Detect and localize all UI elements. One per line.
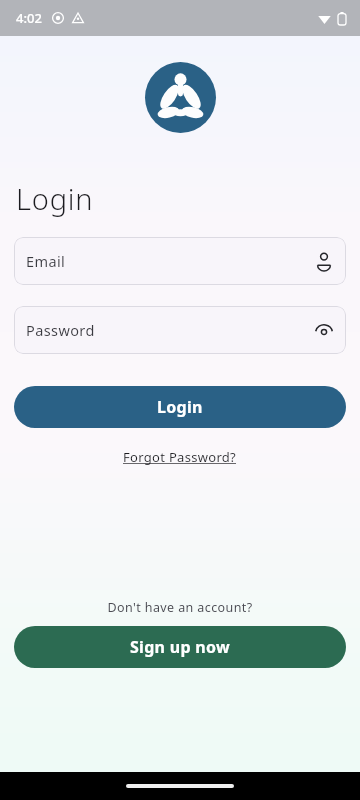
staticText: Don't have an account?	[0, 599, 360, 616]
staticText: Login	[157, 396, 203, 418]
other: Show password	[314, 320, 334, 340]
staticText: Password	[26, 320, 314, 340]
button[interactable]: Login	[14, 386, 346, 428]
staticText: Forgot Password?	[123, 448, 237, 466]
button[interactable]: Password	[14, 306, 346, 354]
button[interactable]: Email	[14, 237, 346, 285]
staticText: Login	[16, 179, 94, 218]
staticText: Email	[26, 251, 314, 271]
button[interactable]: Sign up now	[14, 626, 346, 668]
button[interactable]: Forgot Password?	[115, 444, 245, 470]
staticText: 4:02	[16, 9, 42, 27]
other: Email account	[314, 251, 334, 271]
staticText: Sign up now	[130, 636, 231, 658]
